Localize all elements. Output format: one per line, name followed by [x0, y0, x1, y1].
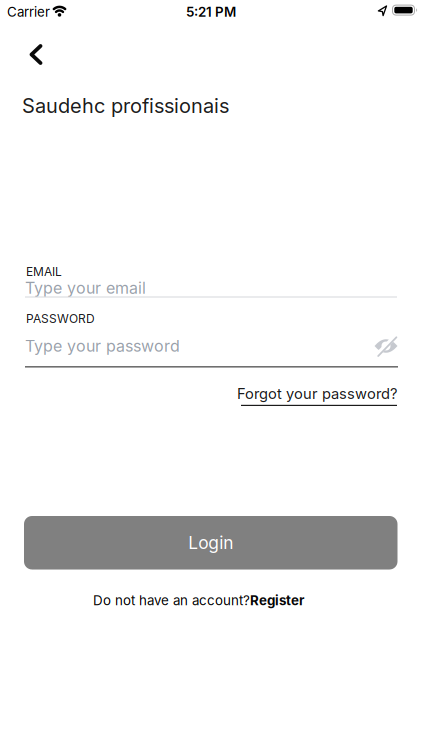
staticText: PASSWORD	[26, 311, 95, 326]
button[interactable]: Forgot your password?	[237, 385, 397, 406]
staticText: Carrier	[7, 4, 50, 20]
staticText: Type your email	[25, 278, 146, 297]
button[interactable]: Email	[25, 275, 397, 300]
staticText: Login	[188, 532, 233, 553]
staticText: Forgot your password?	[237, 385, 397, 402]
button[interactable]: Show password	[374, 336, 398, 356]
button[interactable]: Register	[250, 592, 304, 608]
staticText: Type your password	[25, 336, 180, 355]
button[interactable]: Login	[24, 516, 397, 569]
staticText: Saudehc profissionais	[22, 94, 229, 118]
staticText: Register	[250, 592, 304, 608]
staticText: 5:21 PM	[186, 4, 236, 20]
staticText: Do not have an account?	[93, 592, 250, 608]
staticText: EMAIL	[26, 264, 62, 279]
button[interactable]: Back	[24, 39, 55, 70]
button[interactable]: Password	[25, 333, 365, 358]
